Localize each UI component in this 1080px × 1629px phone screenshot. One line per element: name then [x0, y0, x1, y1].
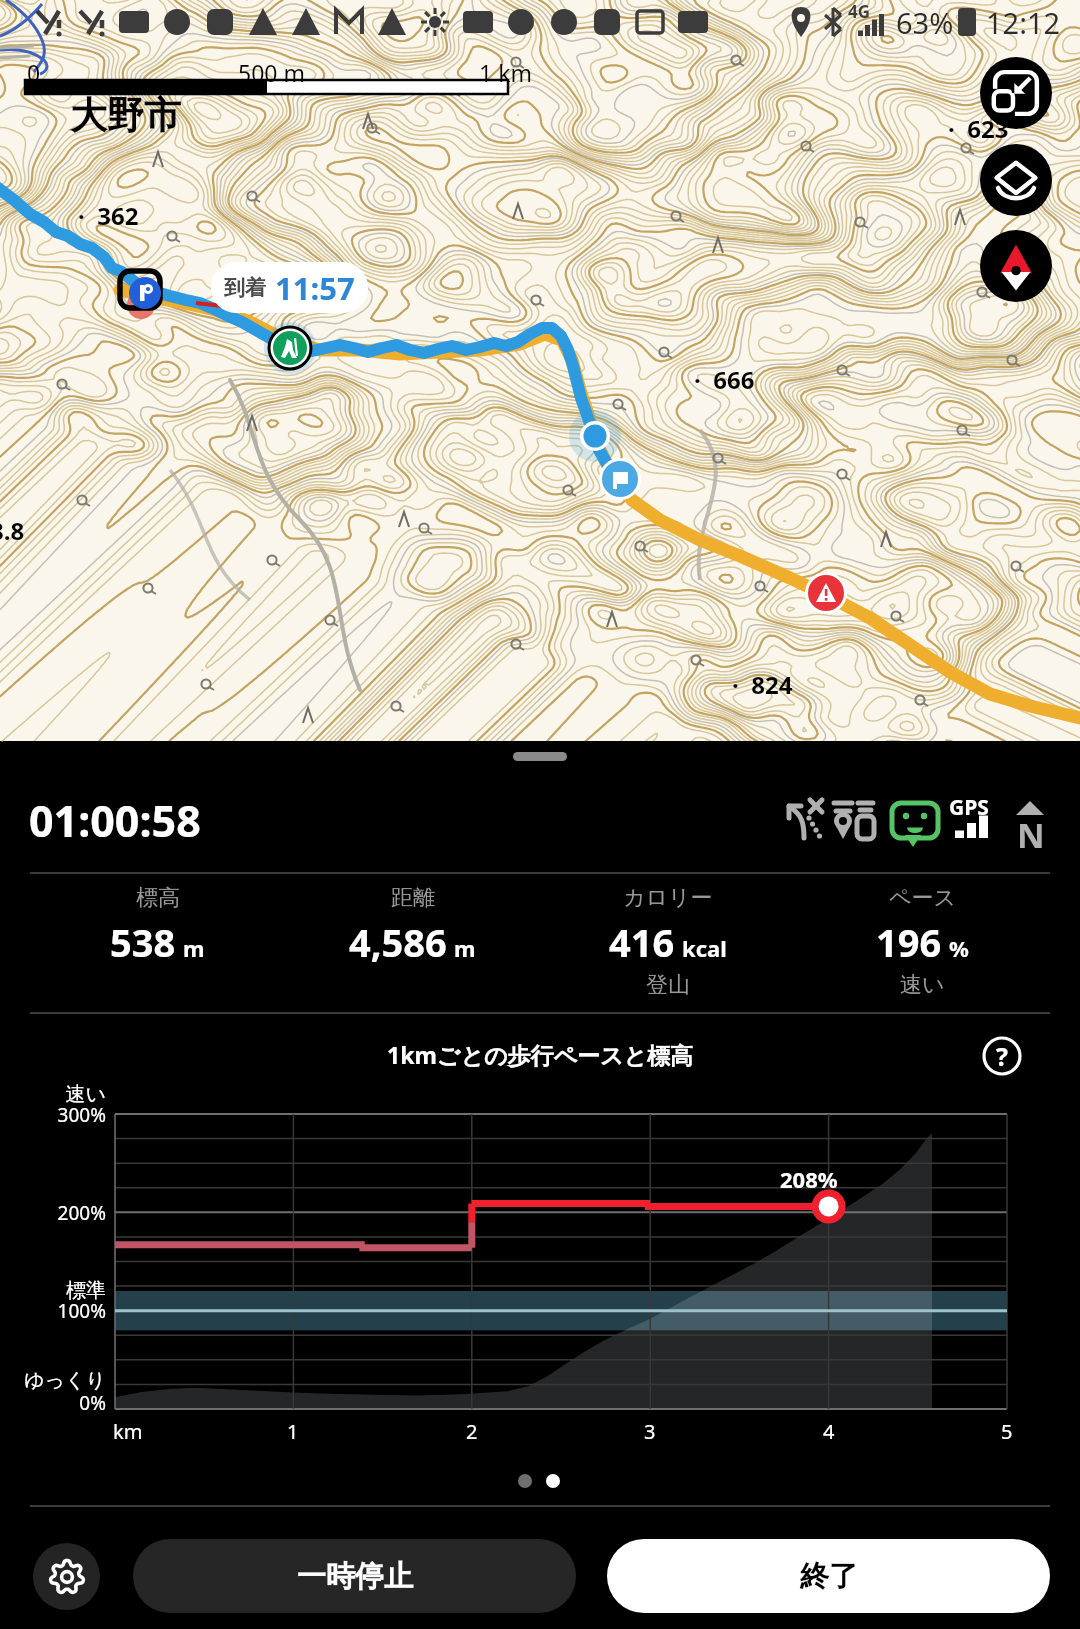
staticText: · 362 — [78, 199, 139, 232]
staticText: 500 m — [238, 57, 305, 88]
staticText: ペース — [889, 884, 957, 912]
staticText: 2 — [466, 1418, 478, 1445]
button[interactable]: Minimize map — [980, 57, 1052, 129]
button[interactable]: 距離 — [285, 884, 540, 968]
button[interactable]: Help — [976, 1030, 1028, 1082]
staticText: 0% — [79, 1390, 106, 1416]
staticText: 12:12 — [986, 3, 1061, 42]
staticText: 速い — [65, 1082, 106, 1107]
staticText: 100% — [57, 1298, 106, 1324]
staticText: 63% — [896, 3, 954, 42]
staticText: % — [949, 933, 969, 963]
staticText: 1kmごとの歩行ペースと標高 — [387, 1039, 694, 1070]
button[interactable]: ペース — [795, 884, 1050, 999]
staticText: ? — [996, 1039, 1008, 1073]
staticText: 416 — [609, 916, 675, 968]
button[interactable]: Compass — [980, 230, 1052, 302]
staticText: 4,586 — [349, 916, 447, 968]
button[interactable]: カロリー — [540, 884, 795, 999]
staticText: 3 — [644, 1418, 656, 1445]
staticText: 大野市 — [70, 92, 181, 139]
staticText: 終了 — [800, 1558, 858, 1595]
staticText: 1 — [287, 1418, 299, 1445]
button[interactable]: Route guidance off — [773, 796, 827, 850]
staticText: m — [454, 933, 476, 963]
staticText: kcal — [682, 933, 727, 963]
staticText: 4G — [848, 0, 871, 23]
staticText: · 623 — [948, 112, 1009, 145]
button[interactable]: Settings — [33, 1543, 100, 1610]
staticText: 登山 — [646, 971, 690, 999]
staticText: 0 — [27, 57, 41, 88]
staticText: 1 km — [479, 57, 532, 88]
staticText: 538 — [110, 916, 176, 968]
button[interactable]: Compass heading — [1003, 796, 1057, 850]
button[interactable]: 終了 — [607, 1539, 1050, 1613]
staticText: 標高 — [136, 884, 180, 912]
staticText: · 666 — [694, 363, 755, 396]
staticText: 距離 — [391, 884, 435, 912]
staticText: 到着 — [224, 275, 266, 301]
button[interactable]: Messages — [888, 796, 942, 850]
button[interactable]: 一時停止 — [133, 1539, 576, 1613]
staticText: ゆっくり — [24, 1368, 106, 1393]
staticText: 標準 — [66, 1278, 106, 1303]
staticText: GPS — [949, 793, 989, 822]
staticText: 8.8 — [0, 514, 25, 547]
staticText: · 824 — [732, 668, 793, 701]
staticText: km — [113, 1418, 143, 1445]
button[interactable]: Map layers — [980, 144, 1052, 216]
staticText: カロリー — [623, 884, 713, 912]
staticText: N — [1017, 812, 1045, 858]
button[interactable]: 標高 — [30, 884, 285, 968]
staticText: 4 — [823, 1418, 835, 1445]
staticText: m — [183, 933, 205, 963]
button[interactable]: Waypoints — [827, 796, 881, 850]
staticText: 一時停止 — [297, 1558, 413, 1595]
staticText: 5 — [1001, 1418, 1013, 1445]
staticText: 11:57 — [275, 267, 355, 309]
staticText: 01:00:58 — [29, 791, 201, 850]
staticText: 200% — [57, 1200, 106, 1226]
staticText: 300% — [57, 1102, 106, 1128]
button[interactable]: GPS signal — [945, 796, 999, 850]
staticText: 208% — [780, 1164, 838, 1194]
staticText: 速い — [900, 971, 945, 999]
staticText: 196 — [876, 916, 942, 968]
